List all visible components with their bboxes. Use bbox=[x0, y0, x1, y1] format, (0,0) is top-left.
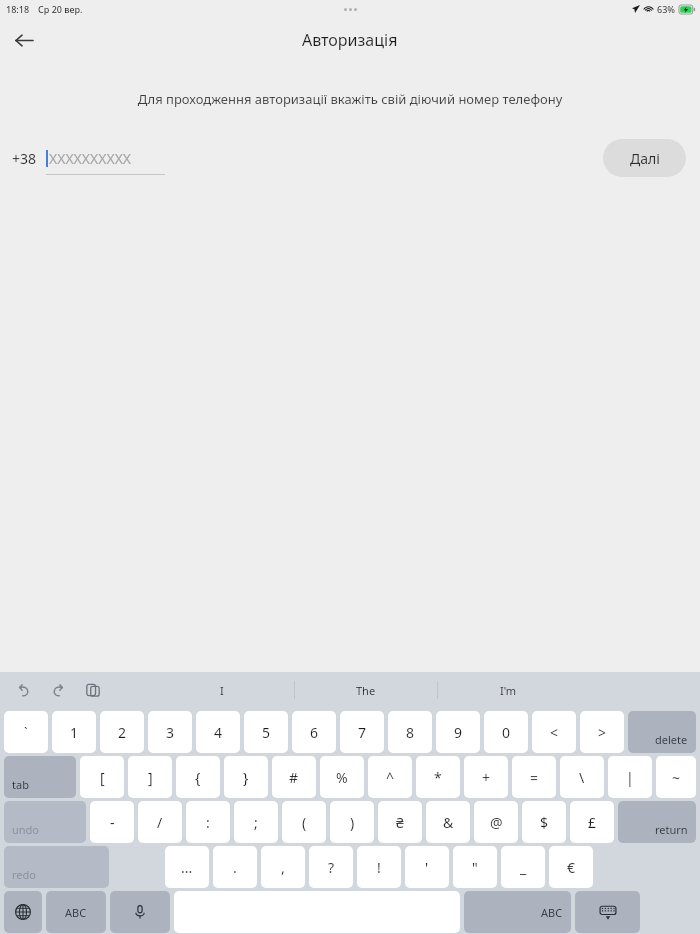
button[interactable]: Далі bbox=[603, 139, 686, 177]
button[interactable]: ) bbox=[330, 801, 374, 843]
staticText: . bbox=[233, 858, 237, 877]
staticText: ABC bbox=[65, 905, 87, 920]
button[interactable]: 3 bbox=[148, 711, 192, 753]
staticText: ^ bbox=[386, 768, 395, 787]
button[interactable]: ! bbox=[357, 846, 401, 888]
staticText: _ bbox=[520, 858, 527, 877]
button[interactable]: \ bbox=[560, 756, 604, 798]
button[interactable]: Paste bbox=[82, 679, 104, 701]
staticText: } bbox=[243, 768, 249, 787]
button[interactable]: & bbox=[426, 801, 470, 843]
staticText: / bbox=[157, 813, 163, 832]
button[interactable]: Back bbox=[8, 24, 40, 56]
button[interactable]: ABC bbox=[464, 891, 571, 933]
button[interactable]: > bbox=[580, 711, 624, 753]
staticText: @ bbox=[490, 813, 503, 832]
staticText: ₴ bbox=[396, 813, 404, 832]
staticText: 4 bbox=[214, 723, 223, 742]
button[interactable]: 7 bbox=[340, 711, 384, 753]
button[interactable]: ₴ bbox=[378, 801, 422, 843]
button[interactable]: 9 bbox=[436, 711, 480, 753]
staticText: 7 bbox=[358, 723, 367, 742]
staticText: - bbox=[110, 813, 115, 832]
button[interactable]: : bbox=[186, 801, 230, 843]
button[interactable]: . bbox=[213, 846, 257, 888]
button[interactable]: The bbox=[294, 675, 437, 705]
staticText: = bbox=[530, 768, 539, 787]
button[interactable]: | bbox=[608, 756, 652, 798]
staticText: ABC bbox=[541, 905, 563, 920]
staticText: # bbox=[289, 768, 299, 787]
button[interactable]: ` bbox=[4, 711, 48, 753]
button[interactable]: undo bbox=[4, 801, 86, 843]
button[interactable]: Hide keyboard bbox=[575, 891, 640, 933]
button[interactable]: Dictation bbox=[110, 891, 170, 933]
staticText: return bbox=[655, 822, 688, 837]
button[interactable]: = bbox=[512, 756, 556, 798]
button[interactable]: - bbox=[90, 801, 134, 843]
button[interactable]: % bbox=[320, 756, 364, 798]
button[interactable]: 5 bbox=[244, 711, 288, 753]
button[interactable]: ] bbox=[128, 756, 172, 798]
button[interactable]: ^ bbox=[368, 756, 412, 798]
staticText: + bbox=[482, 768, 491, 787]
button[interactable]: # bbox=[272, 756, 316, 798]
button[interactable]: Undo bbox=[12, 679, 34, 701]
button[interactable]: Change language bbox=[4, 891, 42, 933]
button[interactable]: tab bbox=[4, 756, 76, 798]
button[interactable]: ( bbox=[282, 801, 326, 843]
staticText: undo bbox=[12, 822, 40, 837]
button[interactable]: Redo bbox=[47, 679, 69, 701]
button[interactable]: € bbox=[549, 846, 593, 888]
button[interactable]: 6 bbox=[292, 711, 336, 753]
staticText: € bbox=[567, 858, 576, 877]
button[interactable]: 8 bbox=[388, 711, 432, 753]
button[interactable]: / bbox=[138, 801, 182, 843]
staticText: 2 bbox=[118, 723, 127, 742]
button[interactable]: $ bbox=[522, 801, 566, 843]
staticText: [ bbox=[100, 768, 105, 787]
staticText: ~ bbox=[672, 768, 681, 787]
button[interactable]: } bbox=[224, 756, 268, 798]
button[interactable]: 0 bbox=[484, 711, 528, 753]
staticText: tab bbox=[12, 777, 29, 792]
staticText: XXXXXXXXXX bbox=[49, 149, 132, 168]
button[interactable]: < bbox=[532, 711, 576, 753]
button[interactable]: ' bbox=[405, 846, 449, 888]
staticText: * bbox=[434, 768, 442, 787]
button[interactable]: 2 bbox=[100, 711, 144, 753]
button[interactable]: redo bbox=[4, 846, 109, 888]
staticText: $ bbox=[540, 813, 549, 832]
button[interactable]: * bbox=[416, 756, 460, 798]
button[interactable]: I'm bbox=[437, 675, 580, 705]
staticText: ] bbox=[148, 768, 153, 787]
staticText: 18:18 bbox=[6, 3, 30, 15]
button[interactable]: ? bbox=[309, 846, 353, 888]
button[interactable]: 4 bbox=[196, 711, 240, 753]
staticText: I bbox=[220, 683, 224, 698]
staticText: redo bbox=[12, 867, 36, 882]
staticText: 6 bbox=[310, 723, 319, 742]
button[interactable]: , bbox=[261, 846, 305, 888]
button[interactable]: ; bbox=[234, 801, 278, 843]
button[interactable]: { bbox=[176, 756, 220, 798]
button[interactable]: return bbox=[618, 801, 696, 843]
staticText: 3 bbox=[166, 723, 175, 742]
button[interactable]: delete bbox=[628, 711, 696, 753]
staticText: ? bbox=[328, 858, 335, 877]
button[interactable]: [ bbox=[80, 756, 124, 798]
staticText: | bbox=[626, 768, 634, 787]
button[interactable]: @ bbox=[474, 801, 518, 843]
staticText: & bbox=[443, 813, 454, 832]
staticText: : bbox=[206, 813, 210, 832]
button[interactable]: ... bbox=[165, 846, 209, 888]
button[interactable]: ABC bbox=[46, 891, 106, 933]
button[interactable]: 1 bbox=[52, 711, 96, 753]
button[interactable]: ~ bbox=[656, 756, 696, 798]
button[interactable]: I bbox=[150, 675, 294, 705]
button[interactable]: £ bbox=[570, 801, 614, 843]
button[interactable]: _ bbox=[501, 846, 545, 888]
button[interactable]: " bbox=[453, 846, 497, 888]
button[interactable]: + bbox=[464, 756, 508, 798]
